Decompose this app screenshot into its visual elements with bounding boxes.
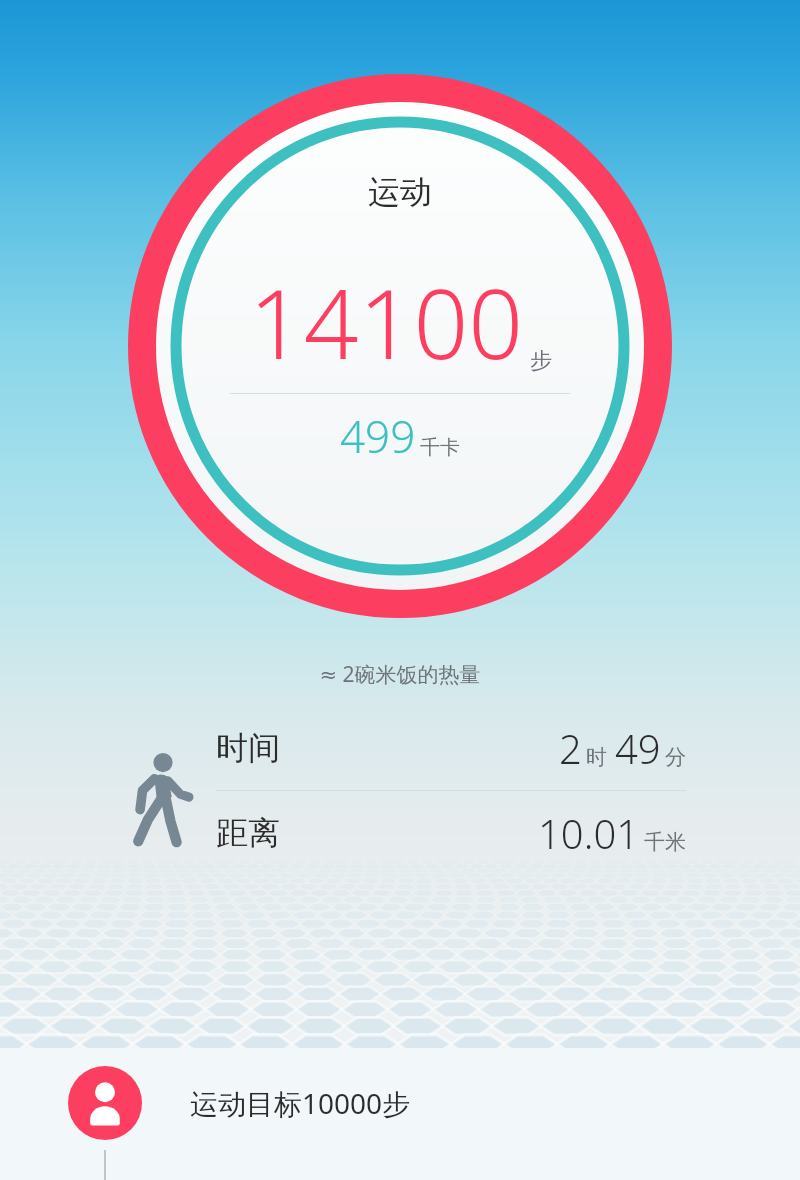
staticText: 10.01 bbox=[538, 806, 640, 860]
button[interactable]: 运动目标10000步 bbox=[0, 1066, 800, 1140]
staticText: 距离 bbox=[216, 813, 280, 853]
staticText: 运动 bbox=[368, 172, 432, 212]
staticText: 49 bbox=[615, 721, 661, 775]
staticText: 时间 bbox=[216, 728, 280, 768]
staticText: 499 bbox=[340, 406, 416, 466]
staticText: 步 bbox=[530, 347, 552, 375]
staticText: 千卡 bbox=[420, 435, 460, 460]
staticText: 分 bbox=[665, 744, 686, 770]
staticText: ≈ 2碗米饭的热量 bbox=[319, 660, 481, 689]
staticText: 千米 bbox=[644, 829, 686, 855]
staticText: 时 bbox=[586, 744, 607, 770]
button[interactable]: 时间 bbox=[216, 718, 686, 778]
button[interactable]: 距离 bbox=[216, 803, 686, 863]
staticText: 14100 bbox=[249, 256, 524, 387]
other: Walking bbox=[132, 752, 194, 848]
staticText: 运动目标10000步 bbox=[190, 1084, 411, 1122]
staticText: 2 bbox=[559, 721, 582, 775]
